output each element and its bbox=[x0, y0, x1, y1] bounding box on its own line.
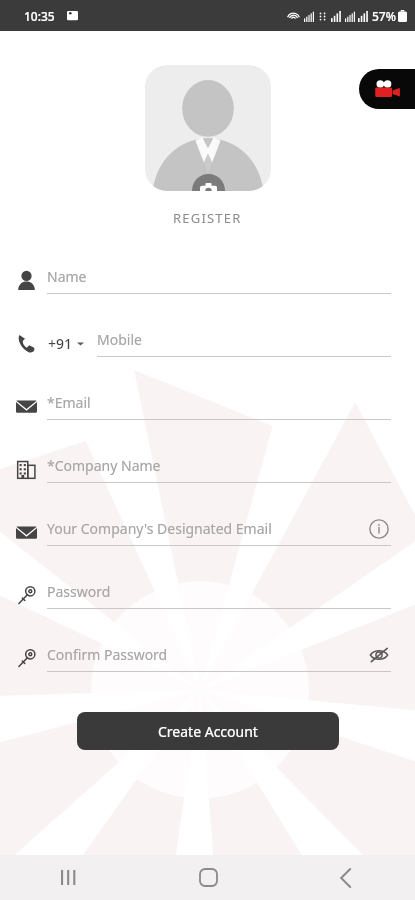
staticText: *Email bbox=[47, 393, 91, 412]
button[interactable]: Confirm Password bbox=[0, 627, 415, 690]
staticText: *Company Name bbox=[47, 456, 161, 475]
button[interactable]: Change profile photo bbox=[145, 65, 271, 191]
button[interactable]: Home bbox=[182, 855, 234, 900]
staticText: 10:35 bbox=[24, 8, 55, 24]
staticText: Create Account bbox=[158, 722, 258, 741]
staticText: 57% bbox=[372, 8, 396, 24]
staticText: +91 bbox=[48, 334, 73, 353]
button[interactable]: +91 bbox=[0, 312, 415, 375]
staticText: Name bbox=[47, 267, 87, 286]
button[interactable]: Watch tutorial video bbox=[359, 69, 415, 109]
button[interactable]: More information bbox=[367, 517, 391, 541]
button[interactable]: *Company Name bbox=[0, 438, 415, 501]
staticText: Your Company's Designated Email bbox=[47, 519, 272, 538]
button[interactable]: Create Account bbox=[77, 712, 339, 750]
staticText: Confirm Password bbox=[47, 645, 168, 664]
button[interactable]: Your Company's Designated Email bbox=[0, 501, 415, 564]
button[interactable]: *Email bbox=[0, 375, 415, 438]
staticText: Mobile bbox=[97, 330, 142, 349]
button[interactable]: Show password bbox=[367, 643, 391, 667]
button[interactable]: Name bbox=[0, 249, 415, 312]
staticText: REGISTER bbox=[173, 209, 242, 227]
button[interactable]: Password bbox=[0, 564, 415, 627]
staticText: Password bbox=[47, 582, 111, 601]
button[interactable]: Recent apps bbox=[43, 855, 95, 900]
button[interactable]: Take photo bbox=[192, 174, 225, 191]
button[interactable]: Back bbox=[320, 855, 372, 900]
